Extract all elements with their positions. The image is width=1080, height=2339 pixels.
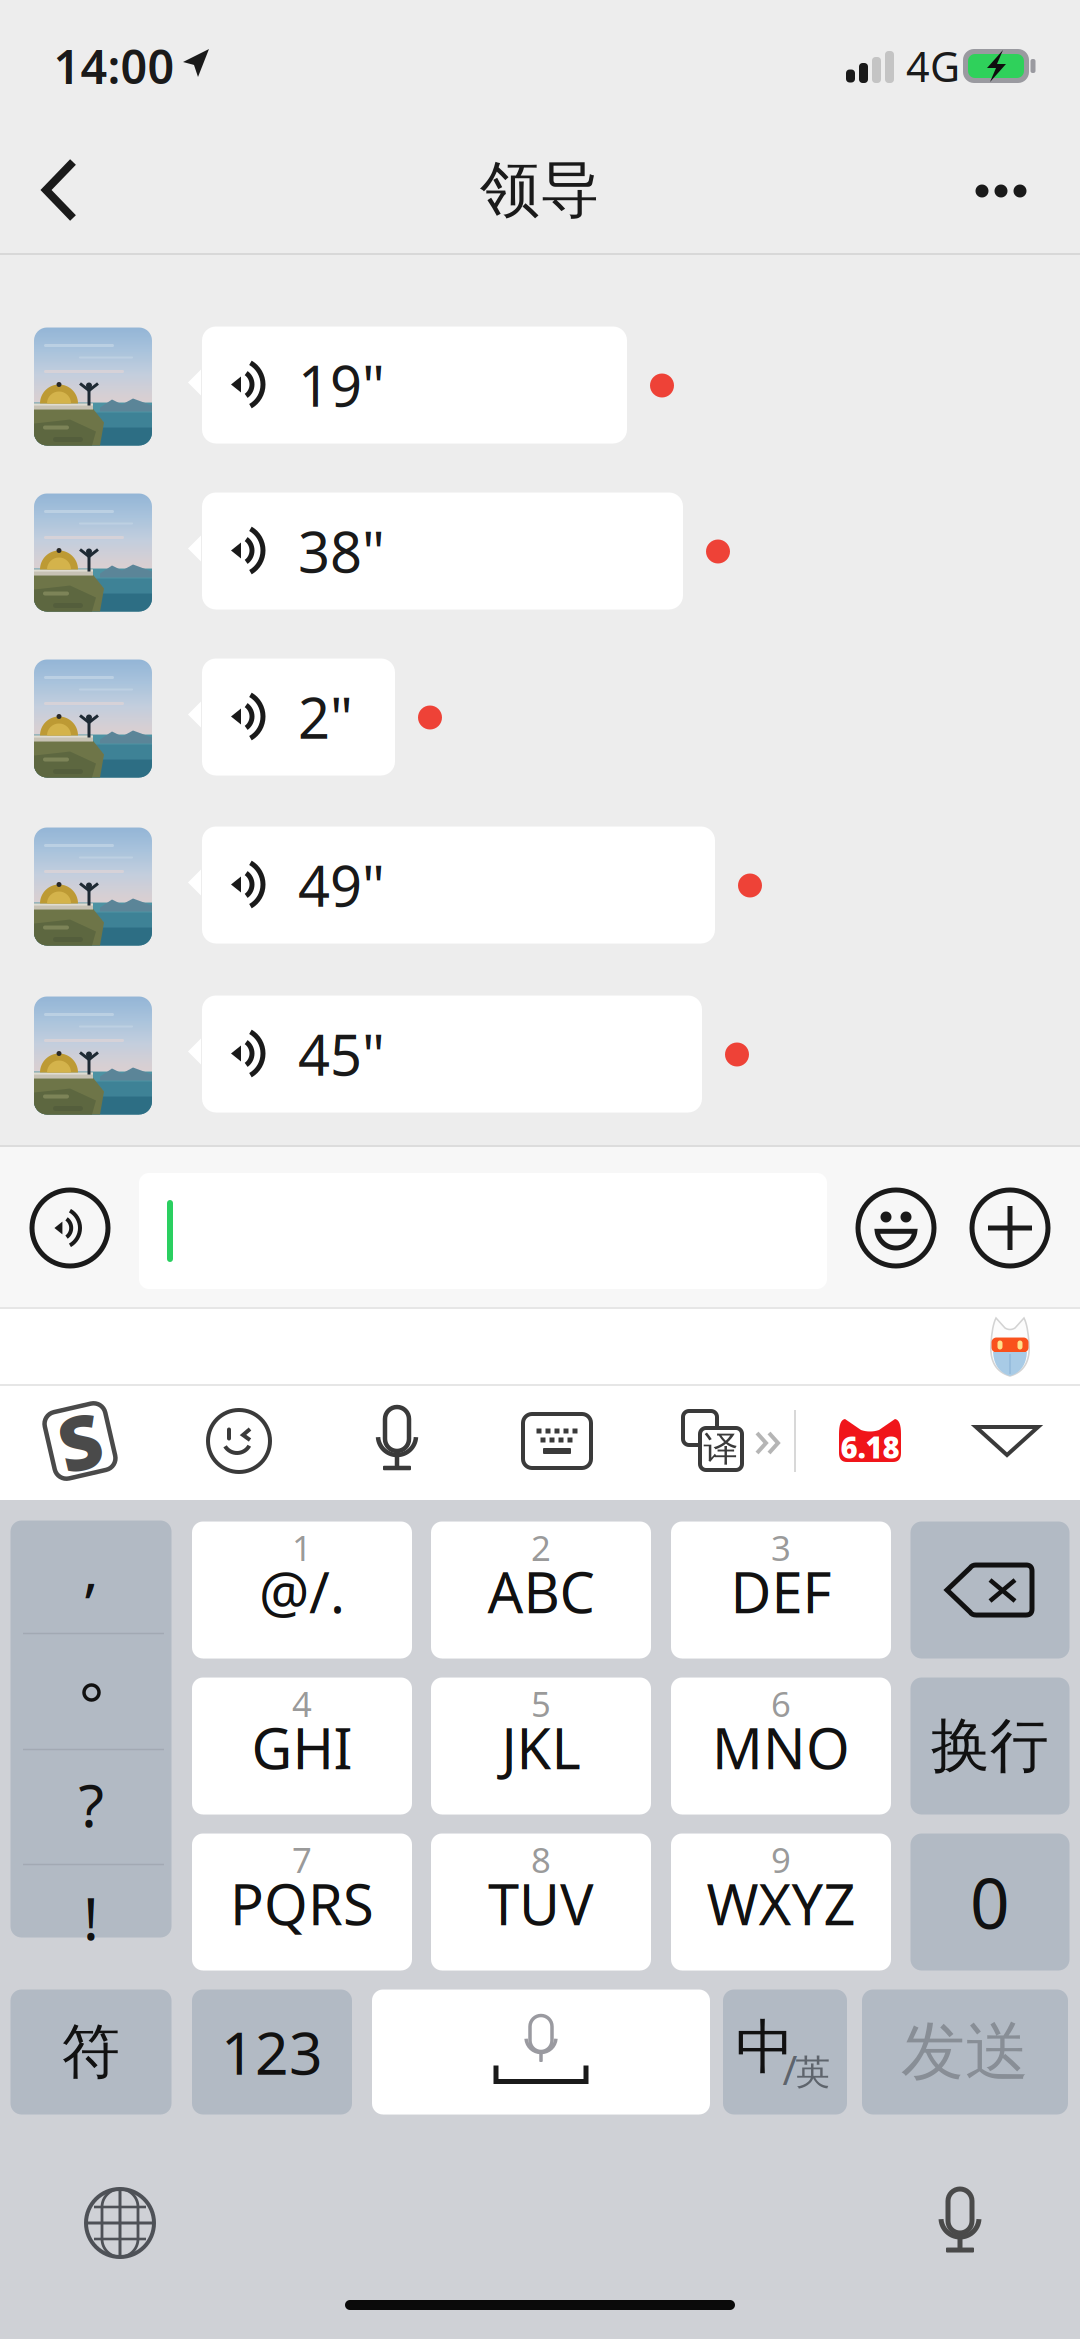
button[interactable]: Voice input: [25, 1183, 115, 1273]
staticText: 英: [795, 2051, 830, 2094]
button[interactable]: ,: [10, 1519, 171, 1633]
staticText: 19": [298, 348, 385, 422]
staticText: 2: [531, 1524, 551, 1570]
staticText: 9: [771, 1836, 791, 1882]
staticText: 7: [292, 1836, 312, 1882]
button[interactable]: Voice input: [372, 1404, 422, 1478]
button[interactable]: 2": [188, 659, 395, 776]
staticText: WXYZ: [706, 1866, 855, 1941]
button[interactable]: Translate: [681, 1409, 745, 1473]
button[interactable]: More actions: [965, 1183, 1055, 1273]
button[interactable]: Sogou settings: [38, 1399, 122, 1483]
button[interactable]: 2: [431, 1521, 651, 1658]
button[interactable]: 4: [192, 1677, 412, 1814]
staticText: S: [58, 1391, 101, 1491]
button[interactable]: Emoji: [851, 1183, 941, 1273]
button[interactable]: 49": [188, 827, 715, 944]
button[interactable]: 38": [188, 493, 683, 610]
staticText: TUV: [488, 1866, 594, 1941]
staticText: 3: [771, 1524, 791, 1570]
button[interactable]: Delete: [910, 1521, 1069, 1658]
button[interactable]: 19": [188, 327, 627, 444]
button[interactable]: Switch keyboard: [84, 2187, 156, 2259]
button[interactable]: 5: [431, 1677, 651, 1814]
staticText: ,: [83, 1528, 99, 1606]
staticText: 45": [298, 1017, 385, 1091]
staticText: 49": [298, 848, 385, 922]
button[interactable]: ?: [10, 1749, 171, 1863]
button[interactable]: Back: [2, 130, 122, 250]
button[interactable]: Dictation: [935, 2186, 985, 2260]
staticText: 中: [735, 2011, 794, 2084]
button[interactable]: Stickers: [206, 1408, 272, 1474]
staticText: @/.: [259, 1554, 345, 1629]
staticText: 4: [292, 1680, 312, 1726]
staticText: JKL: [501, 1710, 580, 1785]
button[interactable]: 1: [192, 1521, 412, 1658]
staticText: 发送: [901, 2013, 1029, 2091]
button[interactable]: !: [10, 1864, 171, 1978]
staticText: 换行: [931, 1710, 1049, 1782]
button[interactable]: Message: [139, 1173, 827, 1289]
staticText: 5: [531, 1680, 551, 1726]
button[interactable]: 符: [10, 1989, 171, 2114]
button[interactable]: Space: [372, 1989, 710, 2114]
staticText: PQRS: [230, 1866, 374, 1941]
staticText: 123: [221, 2013, 323, 2091]
staticText: !: [83, 1878, 99, 1956]
button[interactable]: 换行: [910, 1677, 1069, 1814]
staticText: 14:00: [53, 35, 174, 97]
button[interactable]: 6: [671, 1677, 891, 1814]
staticText: 6.18: [840, 1427, 899, 1466]
staticText: 领导: [480, 153, 600, 227]
staticText: 符: [61, 2016, 120, 2088]
staticText: 4G: [906, 39, 960, 93]
staticText: MNO: [712, 1710, 850, 1785]
staticText: 1: [292, 1524, 312, 1570]
staticText: 2": [298, 680, 353, 754]
button[interactable]: 发送: [862, 1989, 1068, 2114]
button[interactable]: 7: [192, 1833, 412, 1970]
staticText: ABC: [487, 1554, 594, 1629]
staticText: 8: [531, 1836, 551, 1882]
staticText: 38": [298, 514, 385, 588]
button[interactable]: Hide keyboard: [972, 1419, 1042, 1463]
staticText: 0: [970, 1856, 1010, 1948]
button[interactable]: 9: [671, 1833, 891, 1970]
staticText: DEF: [730, 1554, 831, 1629]
button[interactable]: Chinese or English: [723, 1989, 847, 2114]
button[interactable]: 45": [188, 996, 702, 1113]
button[interactable]: 8: [431, 1833, 651, 1970]
staticText: ?: [78, 1765, 103, 1843]
button[interactable]: 3: [671, 1521, 891, 1658]
staticText: GHI: [251, 1710, 352, 1785]
button[interactable]: 0: [910, 1833, 1069, 1970]
staticText: 译: [703, 1428, 738, 1470]
button[interactable]: Keyboard layouts: [521, 1412, 593, 1470]
staticText: 6: [771, 1680, 791, 1726]
button[interactable]: 6.18 promotion: [837, 1417, 903, 1465]
staticText: /: [782, 2043, 797, 2096]
button[interactable]: More: [945, 136, 1055, 246]
button[interactable]: 123: [192, 1989, 352, 2114]
